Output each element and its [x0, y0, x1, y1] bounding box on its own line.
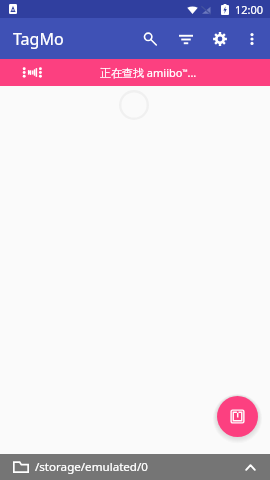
button[interactable]: Filter: [167, 22, 201, 56]
staticText: /storage/emulated/0: [35, 459, 148, 475]
button[interactable]: Scan NFC tag: [217, 396, 258, 437]
staticText: TagMo: [13, 28, 64, 50]
staticText: 正在查找 amiibo™...: [100, 65, 197, 80]
staticText: 12:00: [235, 2, 264, 17]
button[interactable]: 正在查找 amiibo™...: [0, 59, 270, 86]
button[interactable]: /storage/emulated/0: [0, 454, 270, 480]
button[interactable]: Search: [133, 22, 167, 56]
button[interactable]: Settings: [201, 22, 235, 56]
button[interactable]: More options: [235, 22, 269, 56]
button[interactable]: Expand: [239, 456, 261, 478]
